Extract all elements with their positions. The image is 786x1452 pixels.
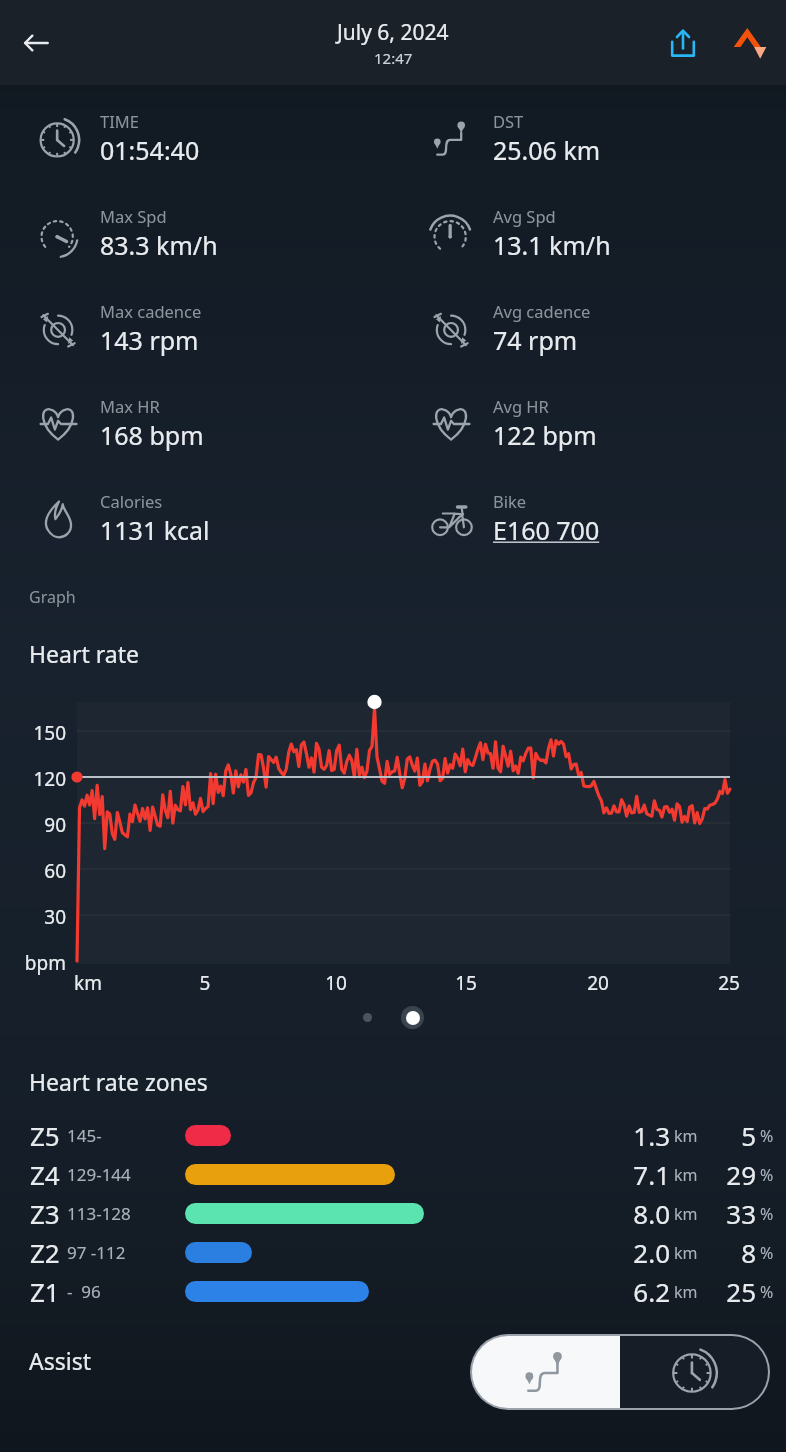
staticText: Heart rate [29,638,139,669]
staticText: 122 bpm [493,418,597,452]
staticText: Assist [29,1345,91,1376]
staticText: 145- [67,1124,185,1147]
staticText: 97 -112 [67,1241,185,1264]
staticText: Graph [29,586,76,608]
staticText: 168 bpm [100,418,204,452]
button[interactable]: Max HR [0,376,393,471]
staticText: 10 [306,970,366,996]
staticText: 5 [708,1118,756,1153]
staticText: 90 [0,812,66,838]
button[interactable]: Z4 [0,1155,786,1194]
staticText: 29 [708,1157,756,1192]
staticText: July 6, 2024 [337,18,449,47]
staticText: 8.0 [612,1196,670,1231]
staticText: % [760,1164,786,1186]
staticText: DST [493,110,524,132]
staticText: 1.3 [612,1118,670,1153]
button[interactable]: Max cadence [0,281,393,376]
staticText: 150 [0,720,66,746]
staticText: 74 rpm [493,323,578,357]
staticText: 01:54:40 [100,133,200,167]
staticText: Heart rate zones [29,1066,208,1097]
staticText: 113-128 [67,1202,185,1225]
staticText: 120 [0,766,66,792]
staticText: Avg HR [493,395,549,417]
staticText: 8 [708,1235,756,1270]
staticText: Z3 [30,1196,60,1231]
staticText: Max HR [100,395,160,417]
staticText: 83.3 km/h [100,228,218,262]
button[interactable]: Strava [724,17,776,69]
staticText: km [674,1203,708,1225]
staticText: E160 700 [493,513,600,547]
staticText: 25 [699,970,759,996]
staticText: Avg Spd [493,205,556,227]
button[interactable]: Calories [0,471,393,566]
button[interactable]: Page 1 [363,1013,372,1022]
button[interactable]: Bike [393,471,786,566]
staticText: Bike [493,490,527,512]
staticText: 2.0 [612,1235,670,1270]
staticText: 13.1 km/h [493,228,611,262]
staticText: % [760,1242,786,1264]
staticText: km [674,1164,708,1186]
staticText: % [760,1203,786,1225]
button[interactable]: Route [472,1336,620,1408]
staticText: 25 [708,1274,756,1309]
staticText: Z5 [30,1118,60,1153]
staticText: 6.2 [612,1274,670,1309]
staticText: Z4 [30,1157,60,1192]
button[interactable]: Avg cadence [393,281,786,376]
staticText: km [58,970,118,996]
staticText: Max cadence [100,300,202,322]
staticText: Calories [100,490,163,512]
staticText: 25.06 km [493,133,601,167]
staticText: 20 [568,970,628,996]
button[interactable]: Avg HR [393,376,786,471]
button[interactable]: TIME [0,91,393,186]
staticText: Z1 [30,1274,60,1309]
staticText: 12:47 [374,48,413,68]
button[interactable]: Z1 [0,1272,786,1311]
staticText: bpm [0,950,66,976]
staticText: - 96 [67,1280,185,1303]
staticText: km [674,1125,708,1147]
staticText: 129-144 [67,1163,185,1186]
staticText: % [760,1125,786,1147]
staticText: 60 [0,858,66,884]
staticText: Z2 [30,1235,60,1270]
button[interactable]: Z3 [0,1194,786,1233]
staticText: 1131 kcal [100,513,210,547]
button[interactable]: Back [8,15,64,71]
staticText: 143 rpm [100,323,199,357]
staticText: 30 [0,904,66,930]
button[interactable]: Max Spd [0,186,393,281]
button[interactable]: Avg Spd [393,186,786,281]
staticText: km [674,1281,708,1303]
button[interactable]: Z5 [0,1116,786,1155]
button[interactable]: Share [656,16,710,70]
staticText: 5 [175,970,235,996]
staticText: 15 [436,970,496,996]
button[interactable]: Z2 [0,1233,786,1272]
staticText: 7.1 [612,1157,670,1192]
button[interactable]: Page 2 [401,1006,424,1029]
staticText: % [760,1281,786,1303]
staticText: Avg cadence [493,300,591,322]
staticText: 33 [708,1196,756,1231]
staticText: km [674,1242,708,1264]
button[interactable]: Time [620,1336,768,1408]
staticText: TIME [100,110,139,132]
staticText: Max Spd [100,205,167,227]
button[interactable]: DST [393,91,786,186]
